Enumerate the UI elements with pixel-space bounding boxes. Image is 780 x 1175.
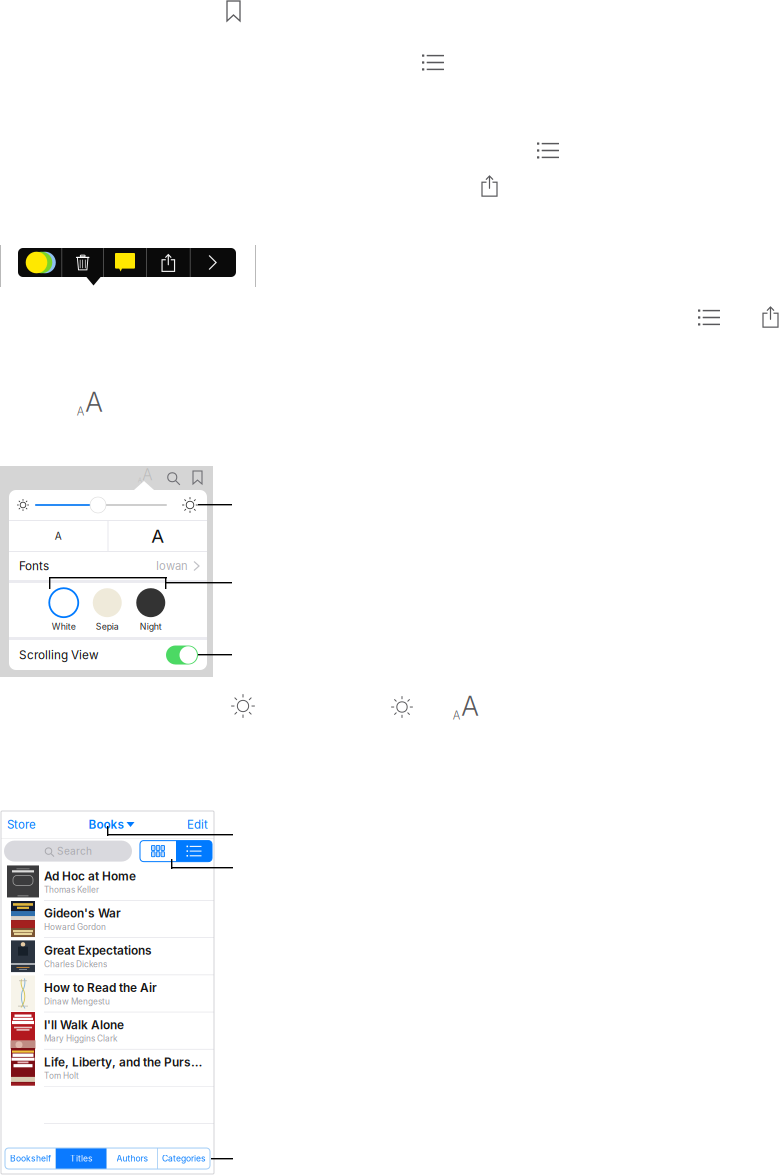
button[interactable]: Table of contents [698,310,720,325]
button[interactable]: Authors [107,1148,158,1169]
button[interactable]: Bookshelf [5,1148,56,1169]
button[interactable]: Fonts [9,552,207,580]
staticText: Howard Gordon [44,922,106,932]
staticText: Scrolling View [19,648,99,662]
button[interactable]: List view [176,841,212,862]
staticText: A [138,476,142,484]
button[interactable]: Add note [104,248,146,277]
button[interactable]: Ad Hoc at Home [1,864,214,900]
button[interactable]: Titles [56,1148,107,1169]
button[interactable]: Books [88,811,134,838]
staticText: Titles [70,1153,93,1164]
button[interactable]: Larger text [108,521,207,551]
staticText: Gideon's War [44,906,121,920]
button[interactable]: Bookmark [193,471,202,484]
button[interactable]: Edit [187,811,214,838]
button[interactable]: Categories [158,1148,210,1169]
button[interactable]: Table of contents [537,143,559,158]
staticText: Search [57,845,92,857]
staticText: A [77,405,85,418]
staticText: A [151,525,164,547]
button[interactable]: Search [166,471,178,483]
staticText: A [453,709,461,722]
button[interactable]: Highlight colour [19,248,61,277]
staticText: Thomas Keller [44,885,99,895]
button[interactable]: Share [763,306,778,327]
staticText: A [461,690,479,722]
button[interactable]: More [191,248,235,277]
button[interactable]: Store [1,811,36,838]
staticText: Ad Hoc at Home [44,869,136,883]
button[interactable]: Smaller text [9,521,107,551]
button[interactable]: I'll Walk Alone [1,1012,214,1049]
staticText: How to Read the Air [44,980,157,995]
staticText: Edit [187,818,208,831]
button[interactable]: Night [129,583,172,637]
button[interactable]: Delete [62,248,103,277]
button[interactable]: Gideon's War [1,901,214,937]
staticText: Mary Higgins Clark [44,1034,118,1044]
button[interactable]: Grid view [140,841,176,862]
staticText: Iowan [156,559,188,573]
staticText: Dinaw Mengestu [44,996,110,1006]
staticText: Books [88,817,123,832]
staticText: A [55,530,62,542]
staticText: Tom Holt [44,1071,79,1081]
button[interactable]: Table of contents [422,55,444,70]
button[interactable]: Brightness [231,694,255,718]
staticText: Fonts [19,559,49,573]
staticText: Store [7,818,36,831]
staticText: A [85,386,103,418]
button[interactable]: Brightness [391,696,413,718]
staticText: Life, Liberty, and the Purs… [44,1055,202,1069]
staticText: Night [140,621,162,632]
button[interactable]: Share [147,248,190,277]
button[interactable]: Text size [76,391,104,413]
staticText: Bookshelf [10,1153,51,1164]
staticText: Sepia [96,621,119,632]
staticText: White [52,621,76,632]
button[interactable]: Text size [137,471,153,484]
button[interactable]: Scrolling View toggle [166,645,198,664]
staticText: Categories [162,1153,206,1164]
button[interactable]: Sepia [85,583,129,637]
button[interactable]: Bookmark [227,1,240,21]
button[interactable]: White [42,583,85,637]
staticText: A [142,465,152,484]
button[interactable]: Life, Liberty, and the Purs… [1,1050,214,1086]
staticText: Authors [116,1153,148,1164]
staticText: Charles Dickens [44,959,107,969]
button[interactable]: Share [482,175,497,196]
staticText: Great Expectations [44,943,152,958]
button[interactable]: Great Expectations [1,938,214,974]
button[interactable]: How to Read the Air [1,975,214,1012]
button[interactable]: Text size [452,695,480,717]
staticText: I'll Walk Alone [44,1018,124,1032]
